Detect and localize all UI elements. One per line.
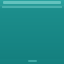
button[interactable]: Primary action — [28, 60, 37, 62]
